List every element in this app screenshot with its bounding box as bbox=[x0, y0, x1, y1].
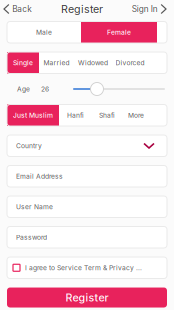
button[interactable]: Hanfi bbox=[59, 104, 92, 126]
button[interactable]: Female bbox=[81, 21, 157, 43]
staticText: Single bbox=[13, 59, 33, 67]
staticText: Male bbox=[36, 28, 52, 36]
button[interactable]: User Name bbox=[7, 196, 167, 217]
button[interactable]: Email Address bbox=[7, 165, 167, 187]
button[interactable]: Divorced bbox=[112, 52, 148, 73]
button[interactable]: Male bbox=[7, 21, 81, 43]
staticText: Divorced bbox=[115, 59, 144, 67]
button[interactable]: Widowed bbox=[74, 52, 112, 73]
staticText: Female bbox=[107, 28, 131, 36]
staticText: Age bbox=[17, 85, 30, 93]
staticText: I agree to Service Term & Privacy ... bbox=[25, 264, 142, 272]
button[interactable]: Just Muslim bbox=[7, 104, 59, 126]
staticText: Back bbox=[12, 4, 32, 14]
staticText: Hanfi bbox=[67, 111, 84, 119]
staticText: Password bbox=[16, 233, 47, 241]
staticText: Register bbox=[65, 291, 108, 304]
staticText: More bbox=[128, 111, 144, 119]
button[interactable]: Sign In bbox=[127, 0, 174, 18]
button[interactable]: Single bbox=[7, 52, 39, 73]
staticText: Shafi bbox=[99, 111, 115, 119]
button[interactable]: Country bbox=[7, 135, 167, 156]
staticText: Married bbox=[43, 59, 69, 67]
staticText: Widowed bbox=[78, 59, 108, 67]
button[interactable]: Register bbox=[7, 287, 167, 307]
staticText: Sign In bbox=[132, 4, 158, 14]
button[interactable]: Shafi bbox=[92, 104, 122, 126]
staticText: 26 bbox=[41, 85, 49, 93]
staticText: Just Muslim bbox=[13, 111, 53, 119]
button[interactable]: I agree to Service Term & Privacy ... bbox=[7, 257, 167, 278]
staticText: Country bbox=[16, 142, 42, 150]
button[interactable]: Password bbox=[7, 226, 167, 248]
button[interactable]: Married bbox=[39, 52, 74, 73]
staticText: Email Address bbox=[16, 172, 63, 180]
button[interactable]: More bbox=[122, 104, 150, 126]
button[interactable]: Back bbox=[0, 0, 37, 18]
staticText: User Name bbox=[16, 203, 53, 211]
staticText: Register bbox=[61, 2, 103, 15]
